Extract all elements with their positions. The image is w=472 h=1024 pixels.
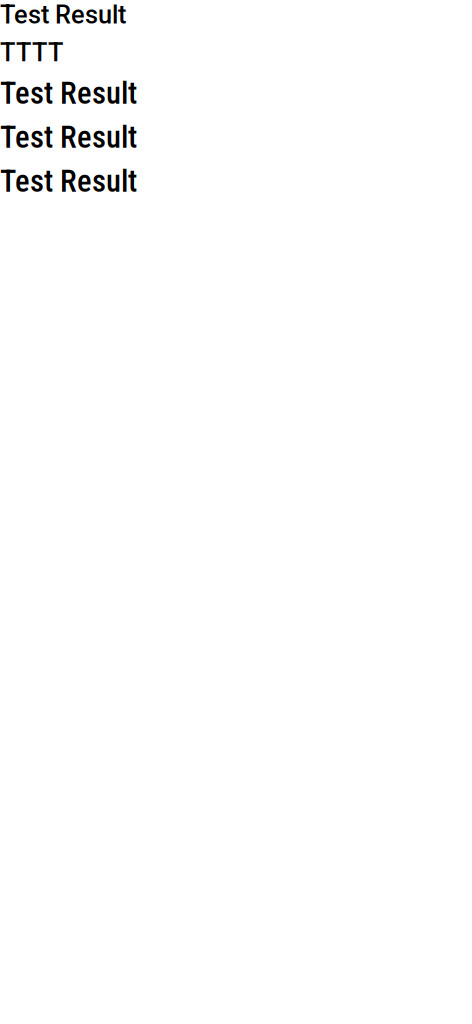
staticText: Test Result <box>0 75 137 111</box>
staticText: TTTT <box>0 38 63 67</box>
staticText: Test Result <box>0 119 137 155</box>
staticText: Test Result <box>0 0 126 30</box>
staticText: Test Result <box>0 163 137 199</box>
